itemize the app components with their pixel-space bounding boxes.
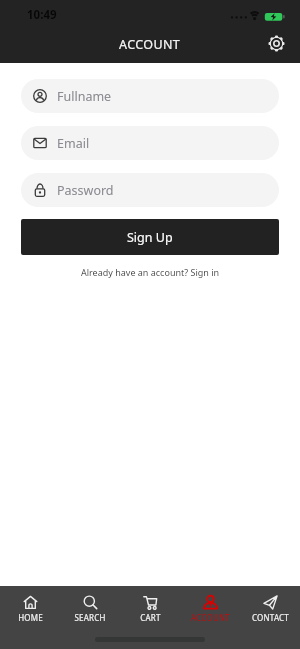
staticText: ACCOUNT <box>191 612 230 623</box>
button[interactable]: CART <box>120 595 180 623</box>
staticText: CONTACT <box>252 612 289 623</box>
staticText: 10:49 <box>27 7 57 23</box>
staticText: Email <box>57 135 90 152</box>
button[interactable]: Already have an account? Sign in <box>75 264 226 280</box>
staticText: Sign Up <box>127 229 173 246</box>
button[interactable]: CONTACT <box>240 595 300 623</box>
button[interactable]: Email <box>21 126 279 160</box>
button[interactable]: Fullname <box>21 79 279 113</box>
button[interactable]: Sign Up <box>21 219 279 255</box>
staticText: Fullname <box>57 88 112 105</box>
staticText: Already have an account? Sign in <box>81 266 220 278</box>
button[interactable]: HOME <box>0 595 60 623</box>
staticText: Password <box>57 182 114 199</box>
staticText: ACCOUNT <box>119 36 181 53</box>
button[interactable]: SEARCH <box>60 595 120 623</box>
button[interactable]: Password <box>21 173 279 207</box>
staticText: HOME <box>18 612 43 623</box>
staticText: SEARCH <box>74 612 106 623</box>
button[interactable]: ACCOUNT <box>180 595 240 623</box>
button[interactable] <box>268 35 285 52</box>
staticText: CART <box>140 612 161 623</box>
